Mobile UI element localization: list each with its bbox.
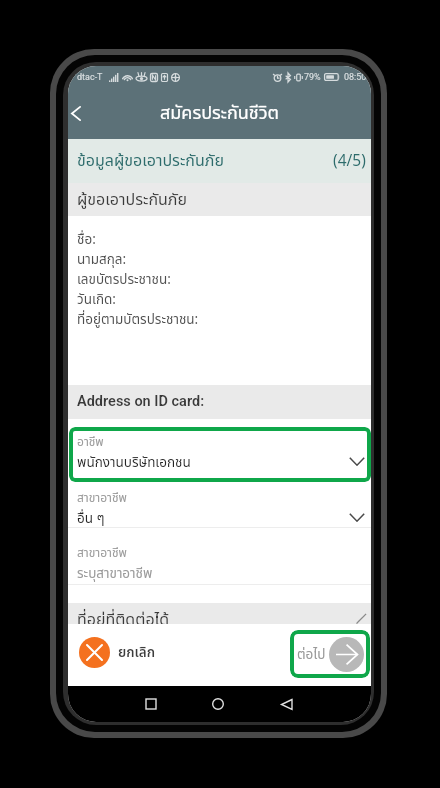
button[interactable]: Back [269,687,303,721]
button[interactable]: Recents [134,687,168,721]
staticText: เลขบัตรประชาชน: [77,270,171,290]
staticText: ต่อไป [297,645,326,665]
staticText: ระบุสาขาอาชีพ [77,564,153,584]
staticText: ยกเลิก [118,643,156,663]
staticText: วันเกิด: [77,290,116,310]
button[interactable]: สาขาอาชีพ [68,528,371,585]
staticText: ข้อมูลผู้ขอเอาประกันภัย [77,149,224,173]
staticText: สาขาอาชีพ [77,544,127,562]
staticText: พนักงานบริษัทเอกชน [77,453,191,473]
staticText: สาขาอาชีพ [77,489,127,507]
staticText: ชื่อ: [77,230,96,250]
staticText: สมัครประกันชีวิต [160,100,279,127]
button[interactable]: ที่อยู่ที่ติดต่อได้ [68,603,371,637]
staticText: ที่อยู่ที่ติดต่อได้ [77,608,170,632]
staticText: นามสกุล: [77,250,127,270]
button[interactable]: Home [201,687,235,721]
staticText: 08:50 [344,72,367,83]
staticText: (4/5) [333,150,366,173]
button[interactable]: ต่อไป [290,630,370,678]
staticText: ที่อยู่ตามบัตรประชาชน: [77,310,199,330]
staticText: ผู้ขอเอาประกันภัย [77,188,188,212]
button[interactable]: ยกเลิก [75,633,160,672]
button[interactable]: อาชีพ [69,427,371,482]
button[interactable]: Back [68,100,94,128]
staticText: Address on ID card: [77,393,205,410]
staticText: dtac-T [77,72,103,83]
button[interactable]: สาขาอาชีพ [68,482,371,528]
staticText: อาชีพ [77,433,104,451]
button[interactable]: ข้อมูลผู้ขอเอาประกันภัย [68,139,371,183]
staticText: 79% [304,72,321,83]
staticText: อื่น ๆ [77,509,105,529]
